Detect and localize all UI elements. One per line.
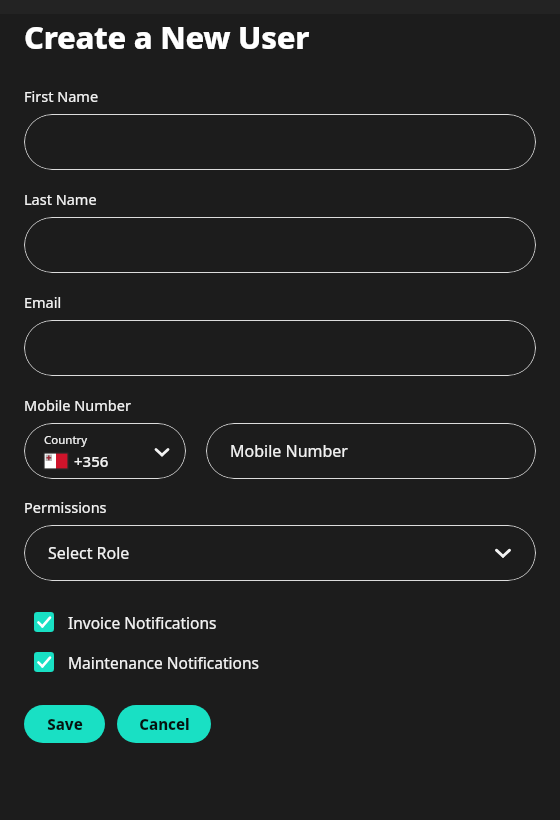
staticText: Email bbox=[24, 292, 62, 312]
button[interactable] bbox=[24, 217, 536, 273]
button[interactable]: Select Role bbox=[24, 525, 536, 581]
button[interactable]: Cancel bbox=[117, 705, 211, 743]
staticText: Invoice Notifications bbox=[68, 612, 217, 633]
button[interactable]: Select country code bbox=[24, 423, 186, 479]
button[interactable]: Maintenance Notifications bbox=[24, 649, 536, 675]
button[interactable]: Mobile Number bbox=[206, 423, 536, 479]
staticText: First Name bbox=[24, 86, 99, 106]
staticText: Last Name bbox=[24, 189, 97, 209]
staticText: Save bbox=[47, 714, 83, 734]
staticText: Select Role bbox=[48, 542, 492, 564]
button[interactable] bbox=[24, 114, 536, 170]
button[interactable] bbox=[24, 320, 536, 376]
button[interactable]: Save bbox=[24, 705, 105, 743]
staticText: Cancel bbox=[139, 714, 190, 734]
staticText: Maintenance Notifications bbox=[68, 652, 259, 673]
button[interactable]: Invoice Notifications bbox=[24, 609, 536, 635]
staticText: Mobile Number bbox=[24, 395, 131, 415]
staticText: Permissions bbox=[24, 497, 107, 517]
staticText: Country bbox=[44, 432, 88, 448]
staticText: +356 bbox=[74, 451, 109, 471]
staticText: Mobile Number bbox=[230, 440, 348, 462]
staticText: Create a New User bbox=[24, 16, 310, 58]
